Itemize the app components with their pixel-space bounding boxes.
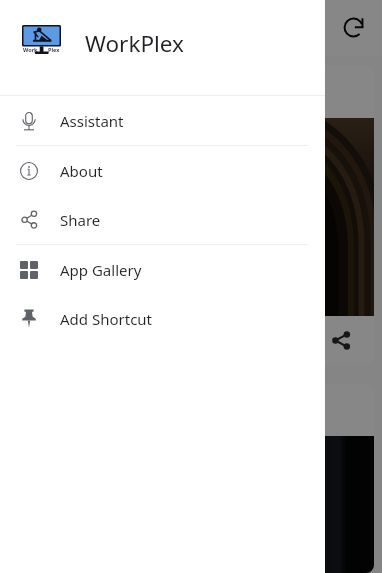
button[interactable]: Share (0, 195, 325, 244)
button[interactable]: Assistant (0, 96, 325, 145)
staticText: Add Shortcut (60, 309, 153, 329)
staticText: Assistant (60, 111, 124, 131)
button[interactable]: Comment (66, 320, 106, 360)
staticText: App Gallery (60, 260, 142, 280)
staticText: WorkPlex (16, 16, 97, 41)
button[interactable]: Share (321, 320, 361, 360)
staticText: About (60, 161, 103, 181)
staticText: Share (60, 210, 101, 230)
button[interactable]: Like (18, 320, 58, 360)
button[interactable]: Add Shortcut (0, 294, 325, 343)
button[interactable]: About (0, 146, 325, 195)
staticText: Work (23, 46, 38, 53)
button[interactable]: Refresh (333, 7, 373, 47)
button[interactable]: WorkPlex (8, 8, 105, 49)
button[interactable]: App Gallery (0, 245, 325, 294)
staticText: 2 hours ago (62, 95, 124, 110)
staticText: WorkPlex (85, 28, 184, 59)
staticText: Plex (48, 46, 60, 53)
